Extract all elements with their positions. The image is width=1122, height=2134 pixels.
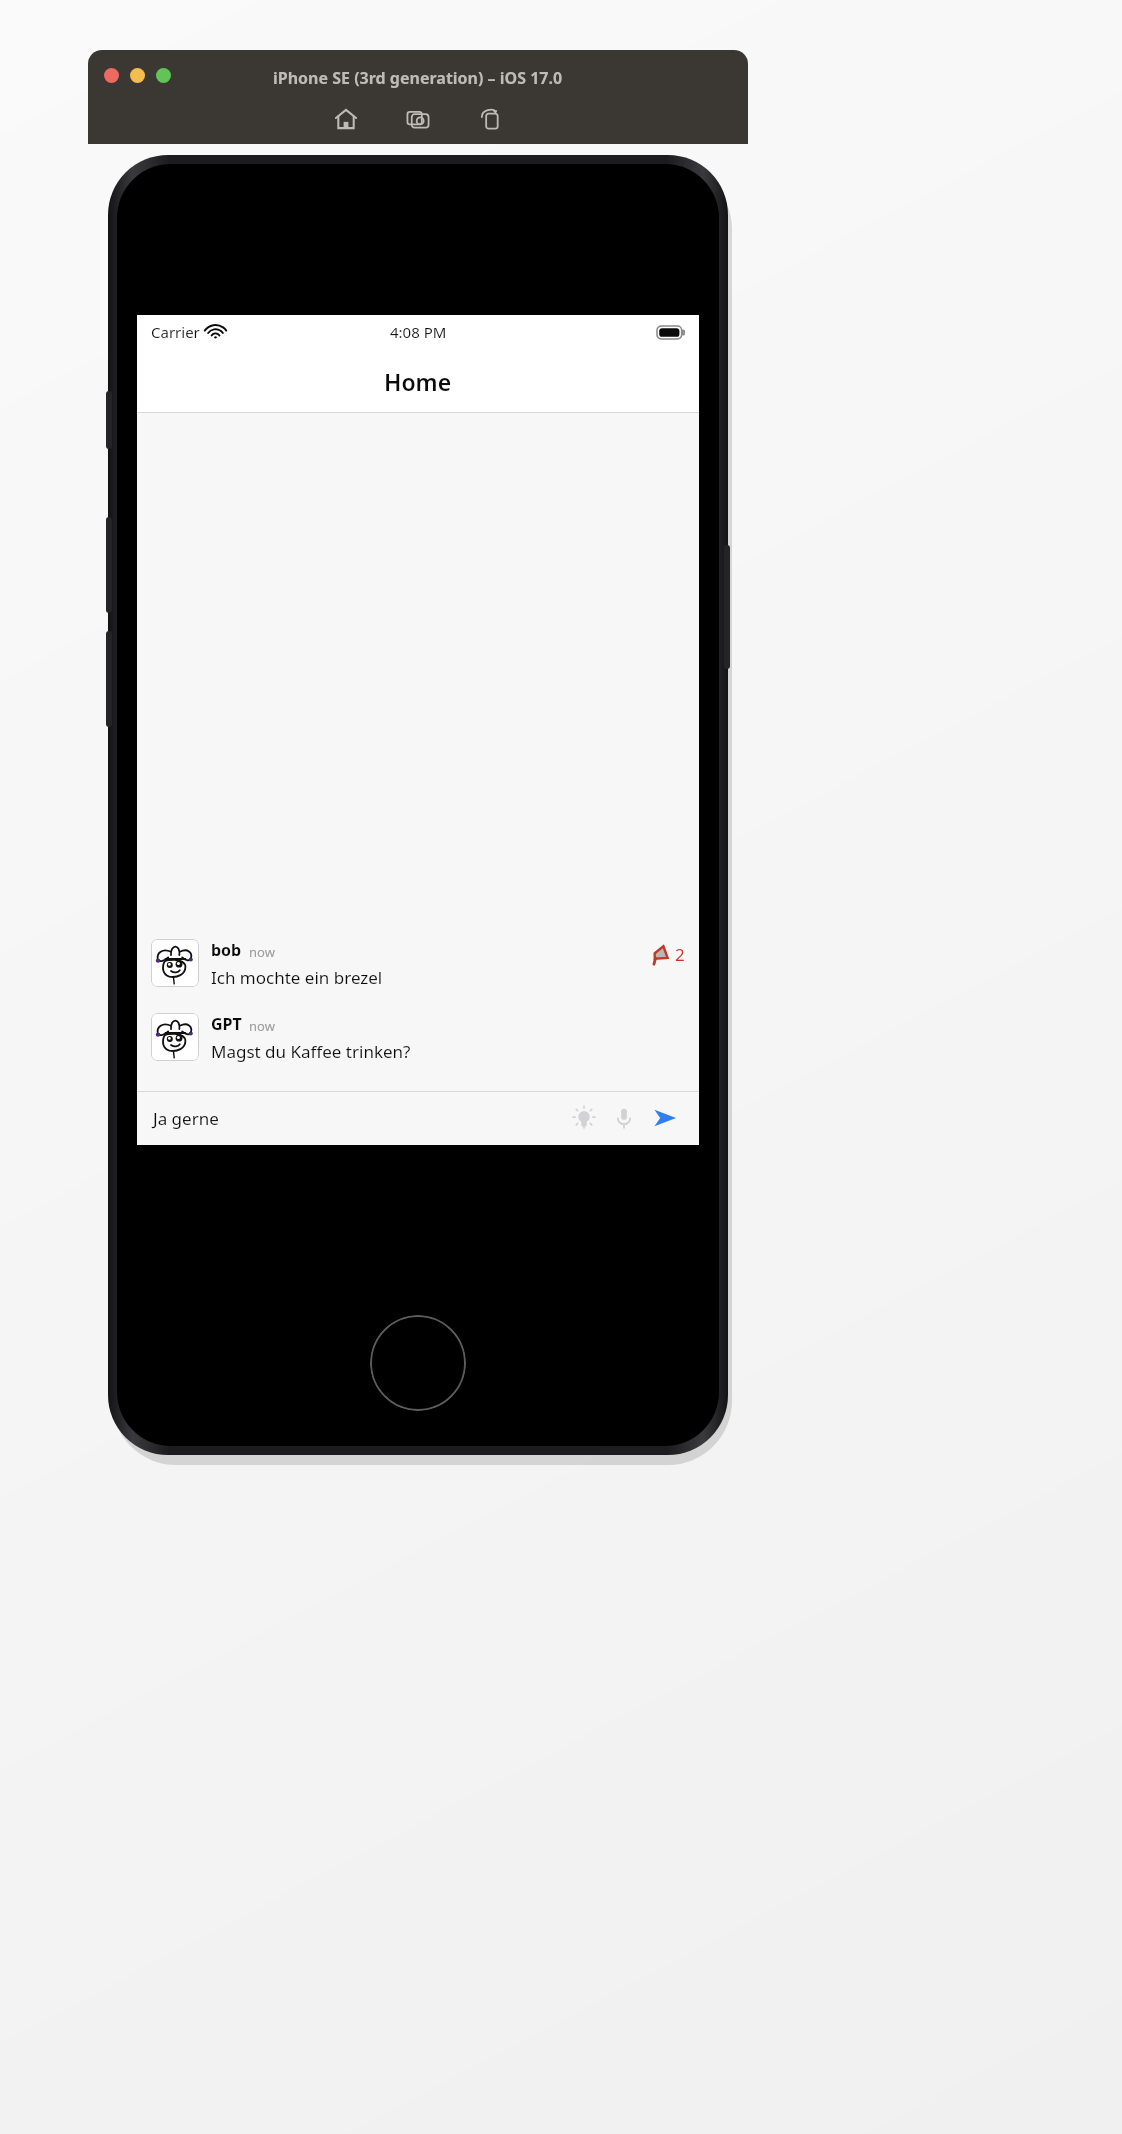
button[interactable]: Close [104,68,119,83]
button[interactable]: Avatar [137,1007,699,1069]
button[interactable]: Avatar [151,1013,199,1061]
button[interactable]: Suggestions [567,1101,601,1135]
button[interactable]: Zoom [156,68,171,83]
button[interactable]: Home [329,102,363,136]
staticText: now [249,943,275,961]
button[interactable]: Announcements 2 [649,943,685,966]
staticText: Ja gerne [153,1107,219,1130]
button[interactable]: Ja gerne [153,1091,567,1145]
button[interactable]: Send [647,1100,683,1136]
staticText: Ich mochte ein brezel [211,966,383,989]
staticText: now [249,1017,275,1035]
staticText: 2 [675,943,685,966]
staticText: 4:08 PM [390,322,447,342]
button[interactable]: Minimize [130,68,145,83]
staticText: bob [211,939,242,961]
button[interactable]: Home button [370,1315,466,1411]
staticText: Magst du Kaffee trinken? [211,1040,411,1063]
staticText: GPT [211,1013,242,1035]
staticText: iPhone SE (3rd generation) – iOS 17.0 [273,67,563,89]
button[interactable]: Avatar [151,939,199,987]
button[interactable]: Screenshot [401,102,435,136]
staticText: Home [384,366,452,397]
button[interactable]: Voice input [607,1101,641,1135]
button[interactable]: Avatar [137,933,699,995]
button[interactable]: Rotate [473,102,507,136]
staticText: Carrier [151,322,200,342]
